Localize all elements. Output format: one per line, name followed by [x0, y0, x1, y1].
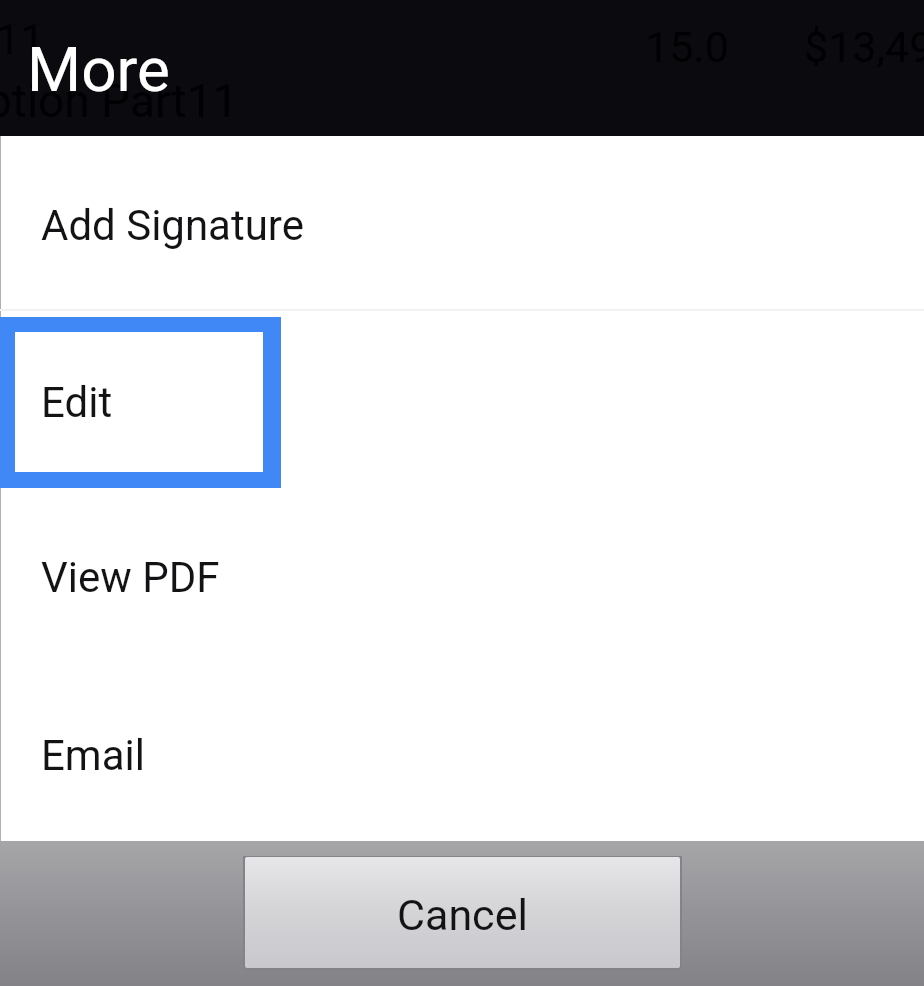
button[interactable]: Email: [0, 671, 924, 843]
staticText: 15.0: [645, 22, 729, 72]
staticText: Edit: [41, 378, 113, 427]
staticText: Cancel: [397, 890, 528, 940]
staticText: ption Part11: [0, 74, 239, 128]
staticText: 11: [0, 14, 45, 64]
other: Edit selected: [0, 317, 281, 488]
button[interactable]: Cancel: [245, 857, 680, 968]
button[interactable]: View PDF: [0, 496, 924, 671]
staticText: View PDF: [41, 553, 220, 602]
staticText: Add Signature: [41, 201, 304, 250]
staticText: More: [27, 33, 170, 106]
staticText: $13,49: [804, 22, 924, 72]
staticText: Email: [41, 731, 145, 780]
button[interactable]: Edit: [0, 306, 924, 496]
button[interactable]: Add Signature: [0, 137, 924, 305]
